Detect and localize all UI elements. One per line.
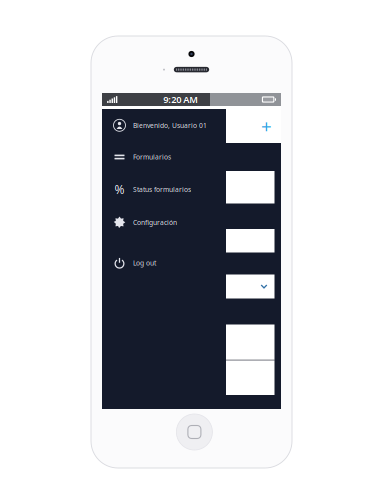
- button[interactable]: Log out: [102, 250, 226, 276]
- button[interactable]: Select option: [226, 274, 274, 298]
- button[interactable]: List row one: [226, 324, 274, 360]
- button[interactable]: List row two: [226, 360, 274, 395]
- staticText: %: [114, 181, 124, 197]
- button[interactable]: Bienvenido, Usuario 01: [102, 112, 226, 138]
- staticText: Configuración: [133, 218, 177, 227]
- staticText: Formularios: [133, 153, 171, 161]
- button[interactable]: Configuración: [102, 209, 226, 235]
- button[interactable]: Formularios: [102, 144, 226, 170]
- button[interactable]: Add: [226, 109, 281, 143]
- staticText: Status formularios: [133, 185, 191, 194]
- button[interactable]: %: [102, 176, 226, 202]
- button[interactable]: Text field: [226, 171, 274, 203]
- staticText: 9:20 AM: [163, 93, 198, 106]
- staticText: +: [261, 114, 272, 138]
- staticText: Bienvenido, Usuario 01: [133, 121, 207, 130]
- staticText: Log out: [133, 259, 156, 267]
